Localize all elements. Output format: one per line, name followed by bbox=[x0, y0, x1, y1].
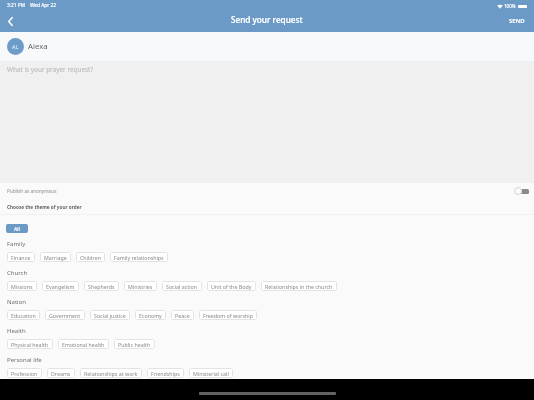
button[interactable]: Relationships in the church bbox=[261, 281, 337, 291]
staticText: Send your request bbox=[231, 14, 303, 25]
staticText: Dreams bbox=[51, 370, 71, 377]
button[interactable]: All bbox=[6, 224, 28, 233]
staticText: Children bbox=[80, 254, 101, 261]
staticText: Missions bbox=[11, 283, 33, 290]
staticText: Choose the theme of your order bbox=[7, 204, 82, 210]
button[interactable]: SEND bbox=[500, 12, 534, 30]
button[interactable]: Government bbox=[45, 310, 85, 320]
button[interactable]: Social justice bbox=[90, 310, 130, 320]
staticText: Relationships at work bbox=[84, 370, 138, 377]
staticText: Ministries bbox=[128, 283, 153, 290]
staticText: 100% bbox=[504, 3, 516, 9]
button[interactable]: Friendships bbox=[147, 368, 184, 378]
button[interactable]: Family relationships bbox=[110, 252, 168, 262]
button[interactable]: Profession bbox=[7, 368, 42, 378]
staticText: Evangelism bbox=[46, 283, 75, 290]
staticText: All bbox=[14, 225, 20, 232]
button[interactable]: Ministries bbox=[124, 281, 157, 291]
staticText: Physical health bbox=[11, 341, 49, 348]
button[interactable]: Freedom of worship bbox=[199, 310, 257, 320]
staticText: Marriage bbox=[44, 254, 67, 261]
staticText: Nation bbox=[7, 298, 26, 306]
staticText: Shepherds bbox=[88, 283, 115, 290]
staticText: Church bbox=[7, 269, 28, 277]
button[interactable]: Children bbox=[76, 252, 105, 262]
staticText: Alexa bbox=[28, 41, 48, 52]
button[interactable]: Physical health bbox=[7, 339, 53, 349]
button[interactable]: Emotional health bbox=[58, 339, 109, 349]
staticText: Education bbox=[11, 312, 36, 319]
button[interactable]: Shepherds bbox=[84, 281, 119, 291]
staticText: Health bbox=[7, 327, 26, 335]
staticText: Public health bbox=[118, 341, 151, 348]
staticText: What is your prayer request? bbox=[7, 65, 94, 74]
staticText: Ministerial call bbox=[193, 370, 229, 377]
button[interactable]: Dreams bbox=[47, 368, 75, 378]
staticText: Publish as anonymous bbox=[7, 188, 57, 194]
staticText: Family relationships bbox=[114, 254, 164, 261]
button[interactable]: Social action bbox=[162, 281, 202, 291]
staticText: Relationships in the church bbox=[265, 283, 333, 290]
staticText: Wed Apr 22 bbox=[30, 2, 56, 9]
button[interactable]: Public health bbox=[114, 339, 155, 349]
staticText: Finance bbox=[11, 254, 31, 261]
staticText: Unit of the Body bbox=[211, 283, 252, 290]
button[interactable]: Economy bbox=[135, 310, 166, 320]
staticText: Profession bbox=[11, 370, 38, 377]
staticText: SEND bbox=[509, 17, 525, 25]
button[interactable]: Back bbox=[0, 11, 21, 32]
button[interactable]: Unit of the Body bbox=[207, 281, 256, 291]
staticText: Family bbox=[7, 240, 26, 248]
staticText: AL bbox=[12, 43, 19, 50]
staticText: Friendships bbox=[151, 370, 180, 377]
staticText: Social justice bbox=[94, 312, 126, 319]
staticText: Peace bbox=[175, 312, 190, 319]
staticText: Freedom of worship bbox=[203, 312, 253, 319]
button[interactable]: Ministerial call bbox=[189, 368, 233, 378]
button[interactable]: Publish as anonymous bbox=[514, 187, 529, 195]
button[interactable]: Education bbox=[7, 310, 40, 320]
button[interactable]: Finance bbox=[7, 252, 35, 262]
button[interactable]: Evangelism bbox=[42, 281, 79, 291]
staticText: Personal life bbox=[7, 356, 42, 364]
button[interactable]: Relationships at work bbox=[80, 368, 142, 378]
staticText: Emotional health bbox=[62, 341, 105, 348]
button[interactable]: Peace bbox=[171, 310, 194, 320]
staticText: Economy bbox=[139, 312, 162, 319]
staticText: 3:21 PM bbox=[7, 2, 26, 9]
staticText: Government bbox=[49, 312, 81, 319]
button[interactable]: Marriage bbox=[40, 252, 71, 262]
button[interactable]: Missions bbox=[7, 281, 37, 291]
staticText: Social action bbox=[166, 283, 198, 290]
